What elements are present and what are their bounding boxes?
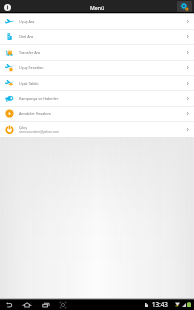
staticText: Otel Ara — [19, 34, 34, 39]
staticText: Çıkış — [19, 125, 27, 130]
button[interactable]: Up — [0, 0, 14, 14]
button[interactable]: Aerobilet Hesabım — [0, 106, 194, 121]
staticText: Uçak Takibi — [19, 81, 39, 86]
staticText: 13:43 — [152, 300, 168, 308]
button[interactable]: Settings — [177, 1, 192, 12]
button[interactable]: Otel Ara — [0, 29, 194, 44]
staticText: Uçuş Fırsatları — [19, 65, 44, 70]
button[interactable]: Çıkış — [0, 122, 194, 137]
staticText: Transfer Ara — [19, 50, 41, 55]
button[interactable]: Screenshot — [55, 298, 71, 310]
staticText: Aerobilet Hesabım — [19, 111, 51, 116]
button[interactable]: Home — [19, 298, 35, 310]
button[interactable]: Uçuş Ara — [0, 14, 194, 29]
staticText: seninucuslarin@yahoo.com — [19, 130, 59, 134]
button[interactable]: Recents — [38, 298, 54, 310]
button[interactable]: Uçuş Fırsatları — [0, 60, 194, 75]
button[interactable]: Uçak Takibi — [0, 76, 194, 91]
button[interactable]: Kampanya ve Haberler — [0, 91, 194, 106]
staticText: Menü — [90, 4, 105, 11]
button[interactable]: Back — [1, 298, 17, 310]
button[interactable]: Transfer Ara — [0, 45, 194, 60]
staticText: Kampanya ve Haberler — [19, 96, 59, 101]
staticText: Uçuş Ara — [19, 19, 35, 24]
